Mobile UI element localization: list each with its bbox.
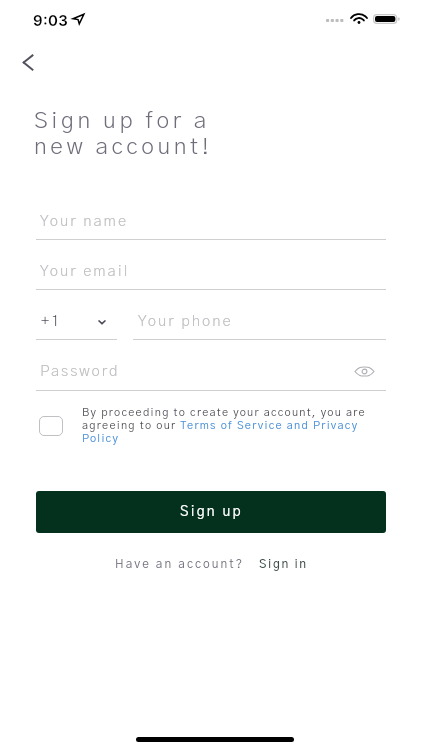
staticText: Sign up for a new account!: [34, 110, 213, 159]
button[interactable]: Sign in: [259, 558, 308, 570]
button[interactable]: Sign up: [36, 491, 386, 533]
staticText: Password: [40, 364, 120, 379]
staticText: Sign in: [259, 558, 308, 570]
staticText: Sign up: [180, 505, 243, 519]
staticText: 9:03: [33, 11, 69, 29]
button[interactable]: Show password: [352, 359, 376, 383]
button[interactable]: Select country code: [94, 314, 110, 330]
staticText: Your email: [40, 264, 130, 279]
button[interactable]: Accept terms: [39, 416, 63, 436]
button[interactable]: Back: [12, 46, 44, 78]
staticText: Your name: [40, 214, 128, 229]
staticText: +1: [41, 314, 62, 329]
staticText: Your phone: [138, 314, 233, 329]
staticText: By proceeding to create your account, yo…: [82, 407, 374, 444]
staticText: Have an account?: [115, 558, 245, 570]
